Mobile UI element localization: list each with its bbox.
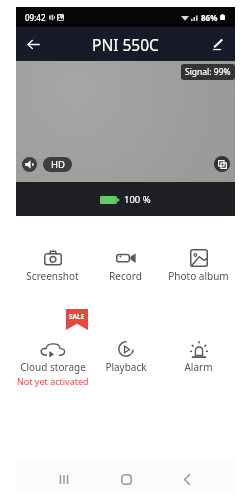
button[interactable]: Signal: 99% <box>181 64 235 80</box>
button[interactable]: Screenshot <box>16 216 89 312</box>
staticText: Photo album <box>168 269 229 283</box>
button[interactable]: Photo album <box>162 216 235 312</box>
button[interactable]: Back <box>20 31 46 57</box>
button[interactable]: Playback <box>89 312 162 408</box>
staticText: SALE <box>69 312 85 321</box>
staticText: PNI 550C <box>92 34 159 55</box>
staticText: 09:42 <box>25 12 46 23</box>
staticText: Cloud storage <box>20 360 86 374</box>
button[interactable]: Fullscreen <box>214 156 230 172</box>
staticText: HD <box>51 158 65 171</box>
staticText: Record <box>109 269 142 283</box>
button[interactable]: Back <box>173 465 201 493</box>
button[interactable]: Home <box>112 465 140 493</box>
staticText: 100 % <box>124 193 151 206</box>
button[interactable]: Mute <box>22 157 37 172</box>
staticText: Screenshot <box>26 269 79 283</box>
button[interactable]: Cloud storage <box>16 312 89 408</box>
staticText: Alarm <box>184 360 213 374</box>
button[interactable]: Alarm <box>162 312 235 408</box>
staticText: Playback <box>105 360 147 374</box>
button[interactable]: Edit <box>205 31 231 57</box>
staticText: Signal: 99% <box>185 66 231 78</box>
staticText: 86% <box>201 12 218 23</box>
button[interactable]: HD <box>43 157 72 172</box>
button[interactable]: Recent apps <box>50 465 78 493</box>
staticText: Not yet activated <box>17 375 89 387</box>
button[interactable]: Record <box>89 216 162 312</box>
